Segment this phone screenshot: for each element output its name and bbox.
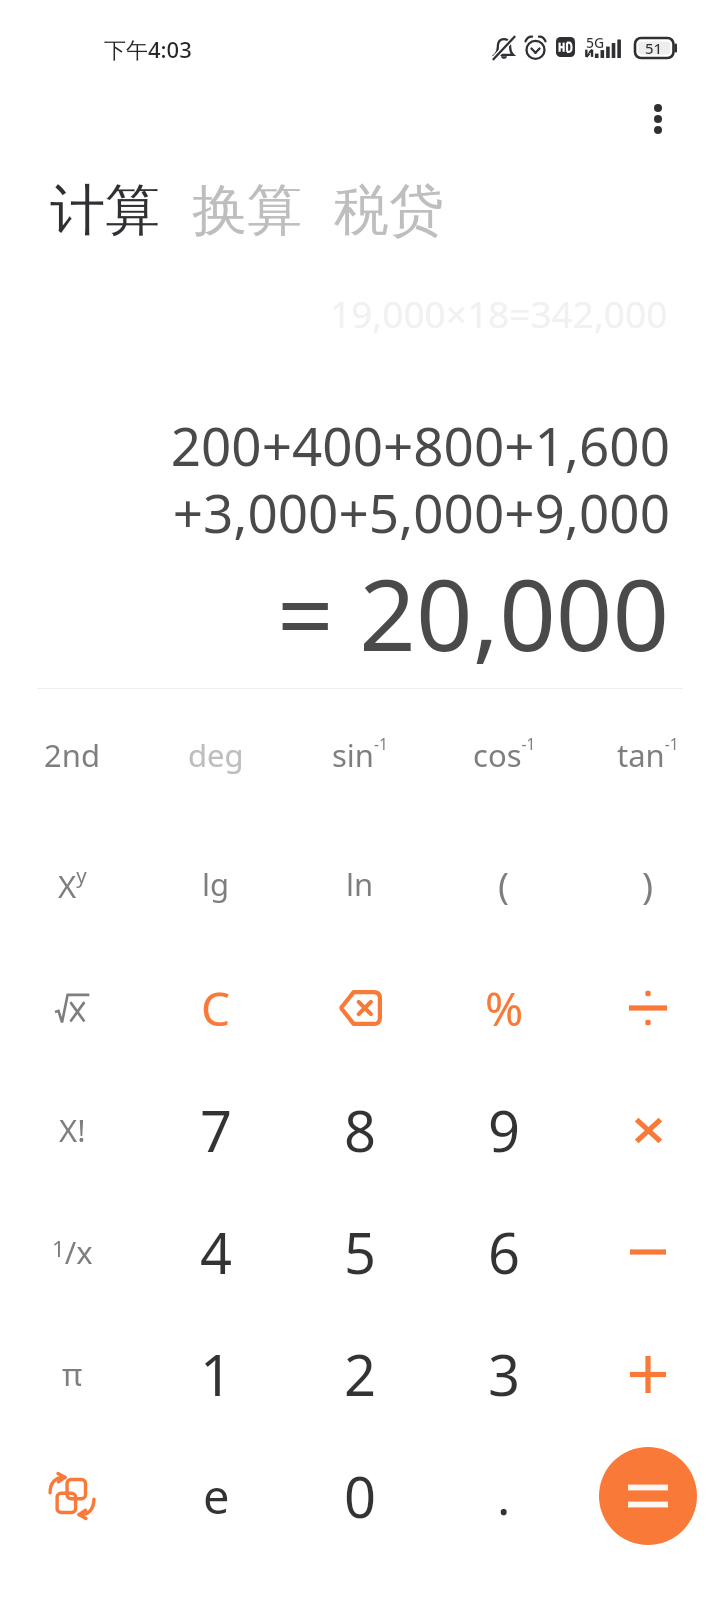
button[interactable]: Square root [0,947,144,1069]
staticText: ( [498,859,510,909]
staticText: π [62,1353,83,1395]
staticText: 9 [488,1092,521,1168]
other: Minus [630,1247,666,1257]
staticText: 200+400+800+1,600 +3,000+5,000+9,000 [170,409,670,548]
other: Unit convert [49,1475,95,1517]
button[interactable]: ln [288,819,432,948]
button[interactable]: Divide [576,947,720,1069]
button[interactable]: tan-1 [576,690,720,819]
staticText: 5G [586,33,605,52]
staticText: 19,000×18=342,000 [330,288,668,338]
staticText: 2nd [44,734,100,776]
staticText: 8 [344,1092,377,1168]
staticText: = 20,000 [277,545,670,680]
button[interactable]: lg [144,819,288,948]
button[interactable]: 6 [432,1191,576,1313]
button[interactable]: 计算 [50,176,160,245]
other: Divide [629,991,667,1025]
staticText: X! [59,1109,86,1151]
staticText: 2 [344,1336,377,1412]
button[interactable]: 7 [144,1069,288,1191]
staticText: 1/x [52,1231,93,1273]
staticText: C [201,977,231,1040]
staticText: 下午4:03 [104,34,192,64]
staticText: 换算 [192,176,302,245]
button[interactable]: 8 [288,1069,432,1191]
button[interactable]: 3 [432,1313,576,1435]
button[interactable]: deg [144,690,288,819]
button[interactable]: ( [432,819,576,948]
other: Backspace [339,990,382,1026]
staticText: cos-1 [473,733,536,776]
button[interactable]: 1/x [0,1191,144,1313]
staticText: sin-1 [332,733,388,776]
button[interactable]: 税贷 [334,176,444,245]
staticText: % [485,977,524,1040]
staticText: e [203,1464,230,1528]
staticText: Xy [58,861,87,907]
staticText: 4 [200,1214,233,1290]
button[interactable]: 4 [144,1191,288,1313]
button[interactable]: X! [0,1069,144,1191]
button[interactable]: cos-1 [432,690,576,819]
staticText: 3 [488,1336,521,1412]
button[interactable]: . [432,1435,576,1557]
staticText: 51 [645,38,663,58]
button[interactable]: 5 [288,1191,432,1313]
button[interactable]: ) [576,819,720,948]
button[interactable]: 2 [288,1313,432,1435]
button[interactable]: More options [622,83,694,155]
staticText: tan-1 [617,733,679,776]
button[interactable]: Equals [576,1435,720,1557]
other: Multiply [634,1117,663,1144]
button[interactable]: 换算 [192,176,302,245]
staticText: ln [346,863,374,905]
other: Plus [630,1356,666,1393]
staticText: deg [188,734,244,776]
staticText: 0 [344,1458,377,1534]
button[interactable]: % [432,947,576,1069]
button[interactable]: Minus [576,1191,720,1313]
button[interactable]: e [144,1435,288,1557]
staticText: 7 [200,1092,233,1168]
staticText: lg [202,863,230,905]
button[interactable]: 1 [144,1313,288,1435]
button[interactable]: π [0,1313,144,1435]
staticText: 计算 [50,176,160,245]
button[interactable]: Plus [576,1313,720,1435]
staticText: 6 [488,1214,521,1290]
staticText: ) [642,859,654,909]
staticText: 1 [200,1336,233,1412]
button[interactable]: sin-1 [288,690,432,819]
other: Square root [55,994,90,1023]
button[interactable]: Backspace [288,947,432,1069]
button[interactable]: 2nd [0,690,144,819]
staticText: 5 [344,1214,377,1290]
button[interactable]: Equals [599,1447,697,1545]
button[interactable]: Unit convert [0,1435,144,1557]
button[interactable]: Xy [0,819,144,948]
button[interactable]: C [144,947,288,1069]
button[interactable]: Multiply [576,1069,720,1191]
staticText: 税贷 [334,176,444,245]
button[interactable]: 9 [432,1069,576,1191]
staticText: . [497,1462,511,1530]
button[interactable]: 0 [288,1435,432,1557]
